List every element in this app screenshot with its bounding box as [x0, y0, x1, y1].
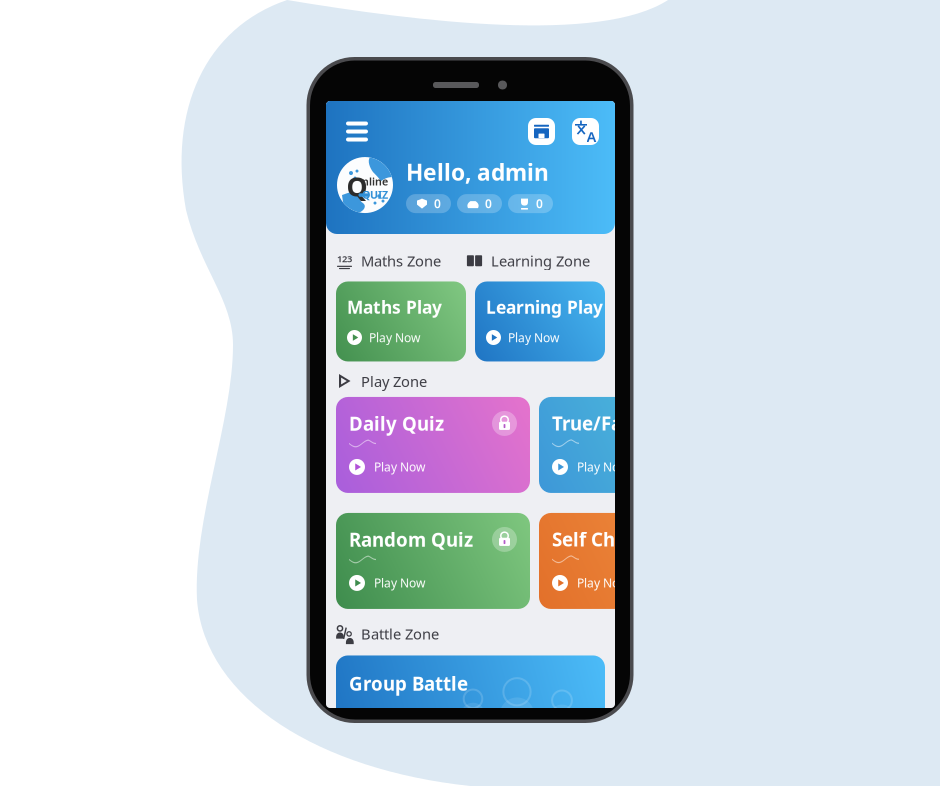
button[interactable]: True/False [539, 397, 733, 493]
staticText: QUIZ [362, 188, 388, 202]
button[interactable]: Maths Play [336, 281, 466, 361]
staticText: Play Now [374, 459, 425, 475]
staticText: Learning Play [486, 295, 603, 318]
staticText: Play Now [369, 329, 420, 345]
button[interactable]: Random Quiz [336, 513, 530, 609]
button[interactable]: Language [572, 118, 599, 145]
button[interactable]: Daily Quiz [336, 397, 530, 493]
staticText: 123 [337, 252, 352, 265]
button[interactable]: Group Battle [336, 655, 605, 727]
staticText: Group Battle [349, 671, 468, 696]
staticText: Random Quiz [349, 527, 473, 552]
staticText: Play Now [508, 329, 559, 345]
button[interactable]: Self Challenge [539, 513, 733, 609]
button[interactable]: Learning Play [475, 281, 605, 361]
staticText: Play Now [577, 575, 628, 591]
staticText: 0 [536, 196, 543, 211]
staticText: Daily Quiz [349, 411, 444, 436]
staticText: Hello, admin [406, 157, 549, 187]
staticText: Learning Zone [491, 251, 590, 270]
staticText: nline [362, 174, 388, 189]
button[interactable]: Menu [342, 118, 372, 144]
staticText: True/False [552, 411, 648, 436]
staticText: Maths Zone [361, 251, 441, 270]
staticText: Play Zone [361, 371, 427, 391]
staticText: Self Challenge [552, 527, 684, 552]
staticText: Play Now [374, 575, 425, 591]
staticText: Play Now [577, 459, 628, 475]
staticText: Battle Zone [361, 624, 439, 643]
staticText: Q [346, 168, 367, 204]
button[interactable]: Store [528, 118, 555, 145]
staticText: A [586, 127, 596, 146]
staticText: 0 [485, 196, 492, 211]
staticText: 0 [434, 196, 441, 211]
staticText: Maths Play [347, 295, 442, 318]
